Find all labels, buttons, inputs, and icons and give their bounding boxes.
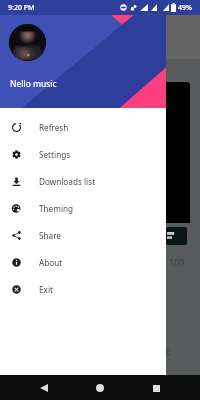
button[interactable]: Refresh	[0, 114, 166, 141]
staticText: 49%	[178, 3, 192, 13]
staticText: 100	[169, 256, 185, 268]
button[interactable]: Settings	[0, 141, 166, 168]
staticText: Share	[39, 230, 61, 241]
button[interactable]: Back	[32, 376, 56, 400]
staticText: Theming	[39, 203, 74, 214]
staticText: About	[39, 257, 63, 268]
staticText: Nello music	[10, 78, 57, 90]
button[interactable]: About	[0, 249, 166, 276]
staticText: Refresh	[39, 122, 69, 133]
button[interactable]: Exit	[0, 276, 166, 303]
staticText: Exit	[39, 284, 53, 295]
button[interactable]: Downloads list	[0, 168, 166, 195]
staticText: c	[166, 345, 171, 357]
button[interactable]: Share	[0, 222, 166, 249]
staticText: 9:20 PM	[8, 3, 35, 13]
button[interactable]: Theming	[0, 195, 166, 222]
staticText: Downloads list	[39, 176, 96, 187]
staticText: Settings	[39, 149, 71, 160]
button[interactable]: Home	[88, 376, 112, 400]
button[interactable]: Recents	[144, 376, 168, 400]
